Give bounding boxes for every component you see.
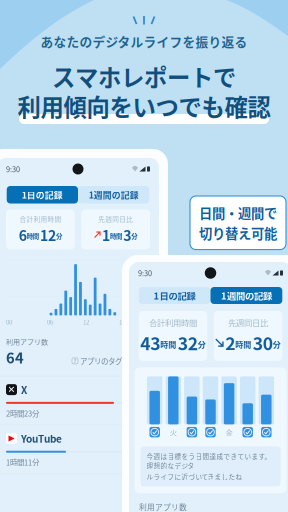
staticText: 12	[83, 317, 89, 326]
staticText: 先週同日比	[228, 317, 268, 329]
staticText: 合計利用時間	[149, 317, 197, 329]
staticText: 12	[40, 225, 56, 245]
button[interactable]: 1週間の記録	[78, 186, 149, 203]
staticText: 切り替え可能	[199, 223, 277, 243]
staticText: 先週同日比	[98, 214, 133, 224]
staticText: 時間	[160, 338, 176, 350]
staticText: YouTube	[21, 431, 62, 446]
button[interactable]: 1週間の記録	[210, 287, 282, 304]
staticText: ルライフに近づいてきましたね	[146, 472, 242, 481]
staticText: 1時間11分	[6, 457, 39, 467]
button[interactable]: ✕	[0, 376, 159, 425]
button[interactable]: 1日の記録	[7, 186, 78, 203]
staticText: 3	[123, 225, 131, 245]
staticText: 時間	[27, 231, 39, 241]
staticText: 合計利用時間	[19, 214, 61, 224]
staticText: 1	[102, 225, 110, 245]
button[interactable]: YouTube	[0, 425, 159, 474]
staticText: 1週間の記録	[221, 289, 272, 302]
staticText: 分	[56, 231, 62, 241]
staticText: 分	[131, 231, 137, 241]
staticText: 1日の記録	[22, 188, 63, 201]
staticText: X	[21, 382, 27, 397]
staticText: 時間	[110, 231, 122, 241]
staticText: 利用アプリ数	[6, 336, 48, 346]
staticText: 32	[178, 330, 198, 355]
staticText: 2時間23分	[6, 408, 39, 419]
staticText: ✕	[7, 384, 15, 395]
staticText: 金	[226, 427, 233, 437]
staticText: 18	[119, 317, 125, 326]
staticText: 9:30	[6, 164, 20, 174]
button[interactable]: ?	[72, 355, 150, 368]
staticText: アプリのタグについて	[80, 355, 150, 366]
staticText: 2	[225, 330, 235, 355]
staticText: 火	[170, 427, 177, 437]
staticText: 分	[273, 338, 281, 350]
staticText: 9:30	[138, 268, 152, 278]
staticText: 06	[47, 317, 53, 326]
staticText: 43	[140, 330, 160, 355]
staticText: より急増	[122, 408, 150, 419]
staticText: スマホレポートで	[52, 59, 236, 93]
staticText: 6	[19, 225, 27, 245]
staticText: 利用アプリ数	[139, 501, 187, 512]
staticText: 64	[6, 346, 24, 368]
staticText: 今週は目標をう日間達成できています。理想的なデジタ	[146, 451, 271, 470]
staticText: 分	[198, 338, 206, 350]
staticText: 時間	[235, 338, 251, 350]
button[interactable]: 1日の記録	[139, 287, 210, 304]
staticText: 利用傾向をいつでも確認	[17, 89, 270, 123]
staticText: 1週間の記録	[89, 188, 139, 201]
staticText: 1日の記録	[154, 289, 196, 302]
staticText: 00	[6, 317, 12, 326]
staticText: 日間・週間で	[199, 203, 277, 222]
staticText: ?	[73, 357, 76, 365]
staticText: あなたのデジタルライフを振り返る	[40, 32, 247, 50]
staticText: 30	[253, 330, 273, 355]
